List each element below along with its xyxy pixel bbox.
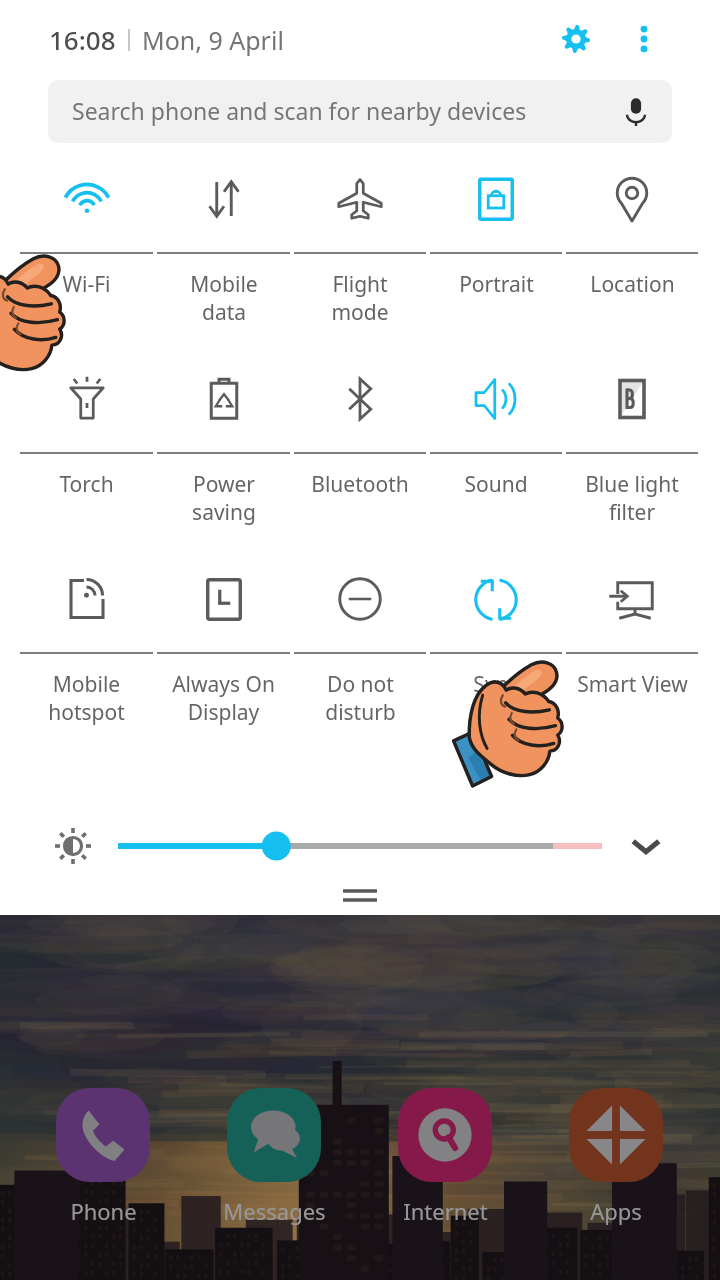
staticText: Torch — [59, 470, 114, 499]
staticText: Do not disturb — [325, 670, 396, 726]
staticText: Apps — [590, 1196, 642, 1226]
button[interactable]: Power saving — [155, 353, 292, 553]
button[interactable]: Always On Display — [155, 553, 292, 753]
button[interactable]: Sound — [428, 353, 564, 553]
button[interactable]: More options — [616, 11, 672, 67]
staticText: Flight mode — [331, 270, 389, 326]
button[interactable]: Sync — [428, 553, 564, 753]
staticText: Phone — [70, 1196, 137, 1226]
staticText: Mobile data — [190, 270, 258, 326]
staticText: Bluetooth — [311, 470, 409, 499]
staticText: Mon, 9 April — [142, 23, 284, 57]
button[interactable]: Bluetooth — [292, 353, 428, 553]
button[interactable]: Smart View — [564, 553, 700, 753]
staticText: Location — [590, 270, 675, 299]
button[interactable]: Brightness — [53, 826, 93, 866]
button[interactable]: Mobile hotspot — [18, 553, 155, 753]
staticText: Always On Display — [172, 670, 275, 726]
staticText: Messages — [223, 1196, 326, 1226]
button[interactable]: Wi-Fi — [18, 153, 155, 353]
staticText: Blue light filter — [585, 470, 679, 526]
staticText: 16:08 — [49, 22, 116, 57]
button[interactable]: Mobile data — [155, 153, 292, 353]
button[interactable]: Flight mode — [292, 153, 428, 353]
staticText: Power saving — [192, 470, 256, 526]
staticText: Mobile hotspot — [48, 670, 125, 726]
button[interactable]: Settings — [548, 11, 604, 67]
staticText: Sound — [464, 470, 528, 499]
button[interactable]: Apps — [531, 1088, 701, 1182]
button[interactable]: Blue light filter — [564, 353, 700, 553]
button[interactable]: Location — [564, 153, 700, 353]
staticText: Search phone and scan for nearby devices — [72, 95, 527, 126]
button[interactable]: Expand quick settings — [622, 822, 670, 870]
button[interactable]: Messages — [189, 1088, 359, 1182]
button[interactable]: Search phone and scan for nearby devices — [48, 80, 672, 143]
button[interactable]: Internet — [360, 1088, 530, 1182]
staticText: Portrait — [459, 270, 534, 299]
staticText: Internet — [403, 1196, 488, 1226]
staticText: Smart View — [577, 670, 688, 699]
button[interactable]: Phone — [18, 1088, 188, 1182]
button[interactable]: Portrait — [428, 153, 564, 353]
button[interactable]: Torch — [18, 353, 155, 553]
button[interactable]: Do not disturb — [292, 553, 428, 753]
staticText: Sync — [473, 670, 519, 699]
staticText: Wi-Fi — [62, 270, 111, 299]
